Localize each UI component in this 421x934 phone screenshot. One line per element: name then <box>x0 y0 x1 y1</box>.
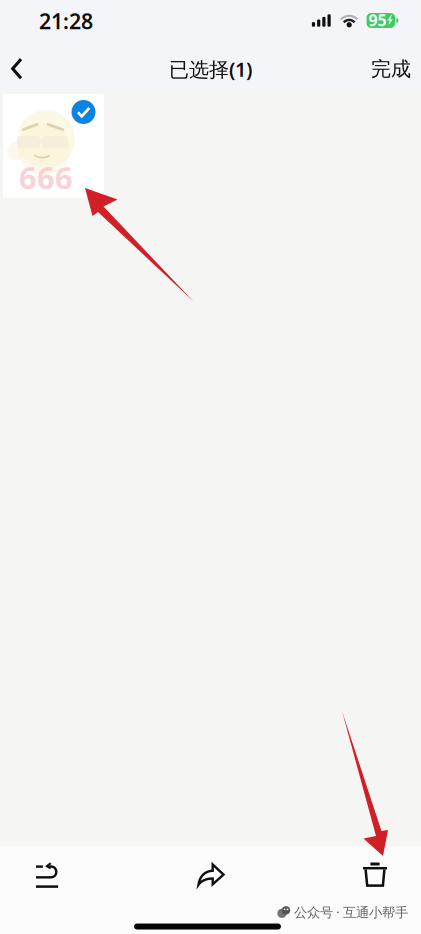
button[interactable]: 完成 <box>351 47 411 91</box>
staticText: 已选择(1) <box>169 56 252 82</box>
button[interactable]: Selected photo <box>3 94 104 198</box>
button[interactable]: Share <box>179 851 243 897</box>
staticText: 完成 <box>371 57 411 81</box>
button[interactable]: Move <box>15 851 79 897</box>
staticText: 公众号 · 互通小帮手 <box>294 903 408 921</box>
button[interactable]: Delete <box>343 851 407 897</box>
staticText: 666 <box>19 157 73 198</box>
staticText: 21:28 <box>39 7 93 35</box>
staticText: 95 <box>369 9 387 31</box>
button[interactable]: Back <box>0 45 44 89</box>
